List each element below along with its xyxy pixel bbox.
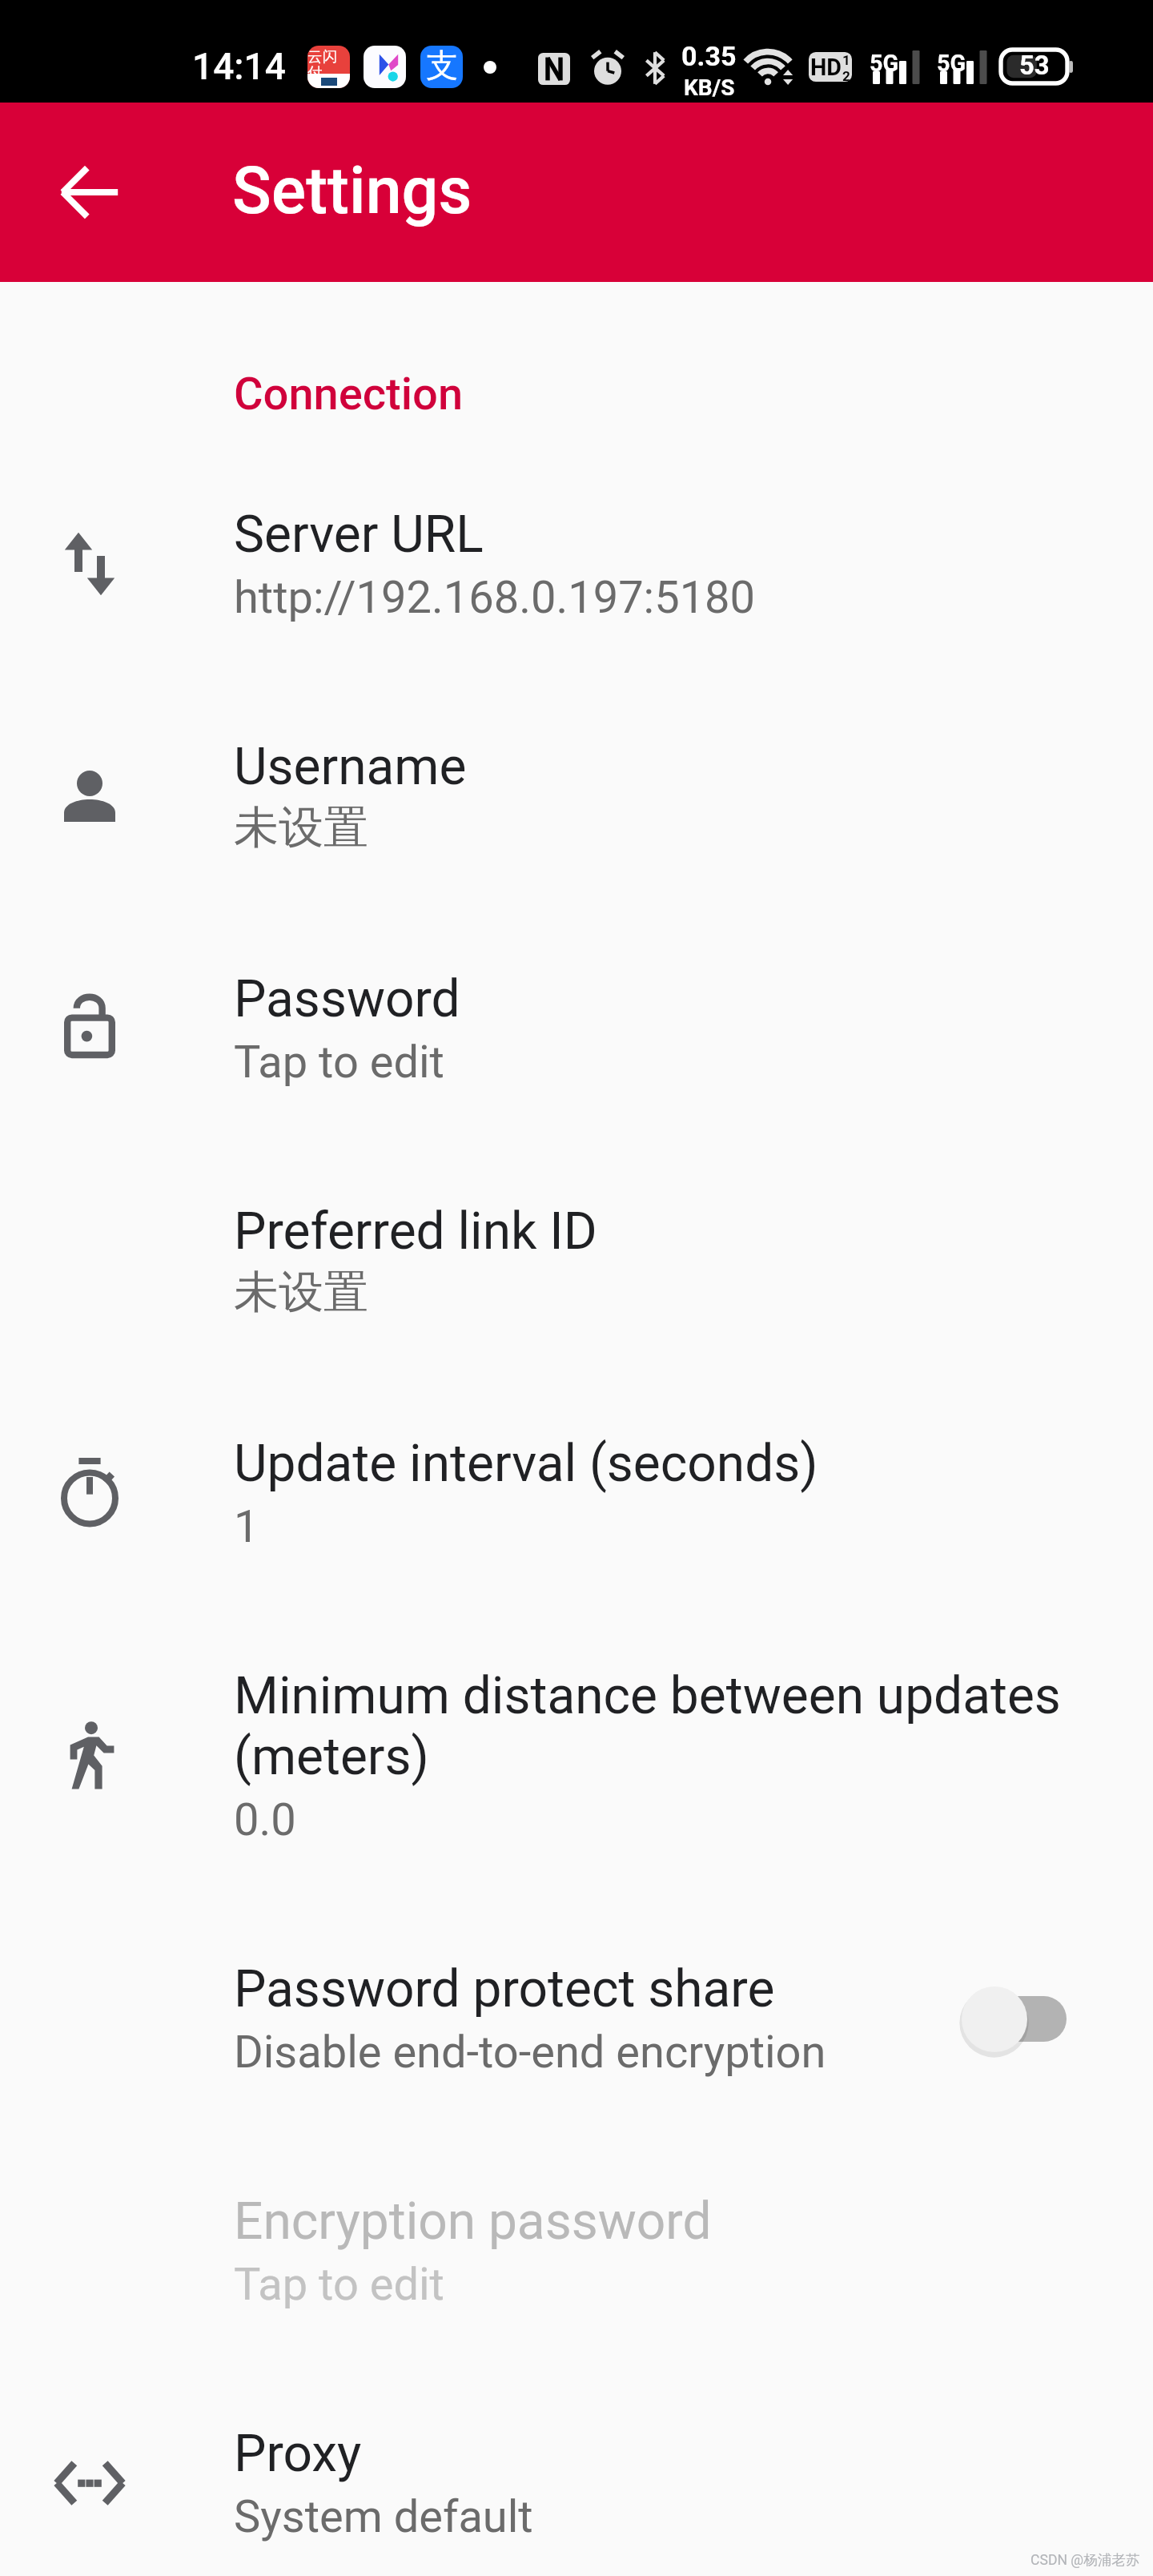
staticText: 5G	[937, 50, 966, 77]
staticText: 14:14	[192, 46, 286, 88]
button[interactable]: Password protect share toggle	[961, 1970, 1067, 2067]
staticText: CSDN @杨浦老苏	[1030, 2552, 1140, 2569]
staticText: Disable end-to-end encryption	[234, 2024, 826, 2079]
staticText: Tap to edit	[234, 1034, 444, 1089]
staticText: HD	[810, 54, 842, 81]
staticText: Preferred link ID	[234, 1201, 597, 1262]
staticText: 0.35	[681, 40, 737, 72]
staticText: Tap to edit	[234, 2256, 444, 2311]
button[interactable]: Minimum distance between updates (meters…	[0, 1609, 1153, 1902]
staticText: Encryption password	[234, 2191, 712, 2252]
button[interactable]: Encryption password	[0, 2135, 1153, 2367]
button[interactable]: Username	[0, 680, 1153, 912]
staticText: 0.0	[234, 1792, 296, 1846]
button[interactable]: Password	[0, 912, 1153, 1145]
button[interactable]: Server URL	[0, 448, 1153, 680]
button[interactable]: Update interval (seconds)	[0, 1377, 1153, 1609]
staticText: Password protect share	[234, 1958, 775, 2019]
staticText: 未设置	[234, 1266, 368, 1321]
staticText: Password	[234, 968, 460, 1029]
staticText: 53	[1019, 50, 1050, 81]
staticText: 2	[842, 68, 850, 82]
staticText: 云闪付	[307, 50, 350, 82]
button[interactable]: Back	[13, 115, 167, 269]
staticText: Server URL	[234, 504, 484, 565]
staticText: 1	[842, 52, 850, 68]
button[interactable]: Proxy	[0, 2367, 1153, 2576]
staticText: Connection	[234, 368, 464, 420]
staticText: Update interval (seconds)	[234, 1433, 818, 1494]
staticText: Settings	[232, 153, 472, 229]
staticText: http://192.168.0.197:5180	[234, 570, 756, 624]
staticText: 1	[234, 1499, 259, 1553]
staticText: Username	[234, 736, 467, 797]
staticText: Minimum distance between updates (meters…	[234, 1665, 1067, 1787]
button[interactable]: Preferred link ID	[0, 1145, 1153, 1377]
staticText: Proxy	[234, 2423, 362, 2484]
staticText: 支	[426, 50, 458, 85]
button[interactable]: Password protect share	[0, 1902, 1153, 2135]
staticText: KB/S	[684, 74, 735, 101]
staticText: 5G	[870, 50, 899, 77]
staticText: 未设置	[234, 802, 368, 856]
staticText: System default	[234, 2489, 533, 2543]
